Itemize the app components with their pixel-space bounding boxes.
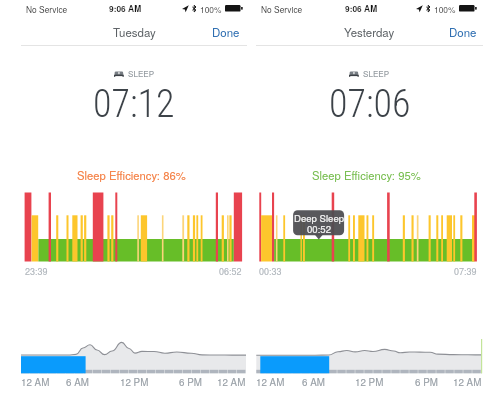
- staticText: Deep Sleep: [294, 211, 345, 225]
- button[interactable]: Yesterday: [169, 24, 500, 40]
- staticText: Done: [449, 24, 477, 40]
- staticText: 07:12: [93, 82, 175, 127]
- staticText: SLEEP: [363, 68, 390, 80]
- staticText: Yesterday: [344, 24, 395, 40]
- staticText: 23:39: [25, 265, 48, 278]
- staticText: 9:06 AM: [345, 3, 378, 15]
- staticText: 6 AM: [66, 375, 89, 389]
- staticText: 12 AM: [217, 375, 246, 389]
- staticText: No Service: [261, 3, 303, 15]
- staticText: Sleep Efficiency: 86%: [77, 167, 186, 183]
- staticText: 6 PM: [179, 375, 202, 389]
- staticText: Done: [212, 24, 240, 40]
- staticText: 12 AM: [453, 375, 482, 389]
- staticText: 07:06: [329, 82, 411, 127]
- staticText: 00:33: [259, 265, 282, 278]
- staticText: 12 PM: [120, 375, 149, 389]
- staticText: 00:52: [307, 222, 332, 236]
- other: Location and Bluetooth: [416, 5, 432, 13]
- staticText: 06:52: [219, 265, 242, 278]
- button[interactable]: Done: [0, 24, 240, 40]
- other: Battery full: [459, 5, 477, 13]
- staticText: No Service: [26, 3, 68, 15]
- staticText: 100%: [434, 3, 456, 15]
- staticText: 6 AM: [302, 375, 325, 389]
- staticText: 6 PM: [415, 375, 438, 389]
- staticText: Tuesday: [113, 24, 156, 40]
- other: Battery full: [225, 5, 243, 13]
- staticText: 9:06 AM: [109, 3, 142, 15]
- button[interactable]: Tuesday: [0, 24, 334, 40]
- staticText: SLEEP: [128, 68, 155, 80]
- other: Location and Bluetooth: [182, 5, 198, 13]
- staticText: 12 AM: [21, 375, 50, 389]
- staticText: 100%: [200, 3, 222, 15]
- staticText: 12 AM: [256, 375, 285, 389]
- staticText: 07:39: [454, 265, 477, 278]
- staticText: 12 PM: [355, 375, 384, 389]
- button[interactable]: Done: [177, 24, 477, 40]
- staticText: Sleep Efficiency: 95%: [312, 167, 421, 183]
